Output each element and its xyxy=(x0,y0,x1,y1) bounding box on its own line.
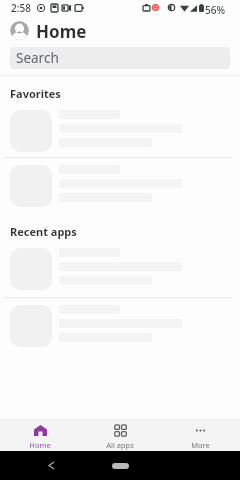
button[interactable]: Account xyxy=(10,21,29,40)
button[interactable] xyxy=(0,248,240,291)
staticText: 56% xyxy=(205,3,225,17)
button[interactable]: Back xyxy=(49,462,54,469)
staticText: More xyxy=(191,440,210,450)
button[interactable]: More xyxy=(160,419,240,451)
staticText: Home xyxy=(36,20,87,43)
staticText: All apps xyxy=(106,440,134,450)
button[interactable]: Search xyxy=(10,47,230,69)
button[interactable] xyxy=(0,305,240,348)
staticText: 2:58 xyxy=(11,1,31,15)
staticText: Search xyxy=(16,49,59,67)
staticText: Recent apps xyxy=(10,224,77,239)
button[interactable]: All apps xyxy=(80,419,160,451)
button[interactable] xyxy=(0,165,240,208)
button[interactable]: Home xyxy=(112,463,129,469)
staticText: Home xyxy=(29,440,51,450)
staticText: Favorites xyxy=(10,86,61,101)
button[interactable] xyxy=(0,110,240,153)
button[interactable]: Home xyxy=(0,419,80,451)
